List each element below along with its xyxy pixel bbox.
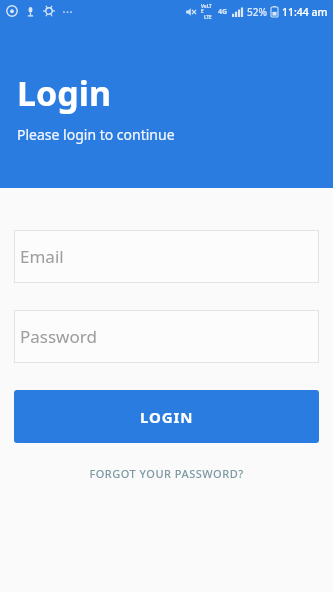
button[interactable]: LOGIN — [14, 390, 319, 443]
staticText: Login — [17, 70, 112, 116]
button[interactable]: FORGOT YOUR PASSWORD? — [0, 456, 333, 490]
button[interactable]: Email — [14, 230, 319, 283]
staticText: FORGOT YOUR PASSWORD? — [89, 466, 244, 481]
staticText: LTE — [204, 14, 212, 20]
staticText: Please login to continue — [17, 125, 175, 144]
staticText: LOGIN — [140, 407, 194, 427]
staticText: Email — [20, 245, 64, 268]
staticText: 11:44 am — [282, 5, 328, 19]
staticText: 52% — [247, 5, 267, 19]
staticText: Password — [20, 325, 97, 348]
staticText: 4G — [218, 7, 228, 17]
button[interactable]: Password — [14, 310, 319, 363]
staticText: VoLTE — [201, 3, 214, 14]
